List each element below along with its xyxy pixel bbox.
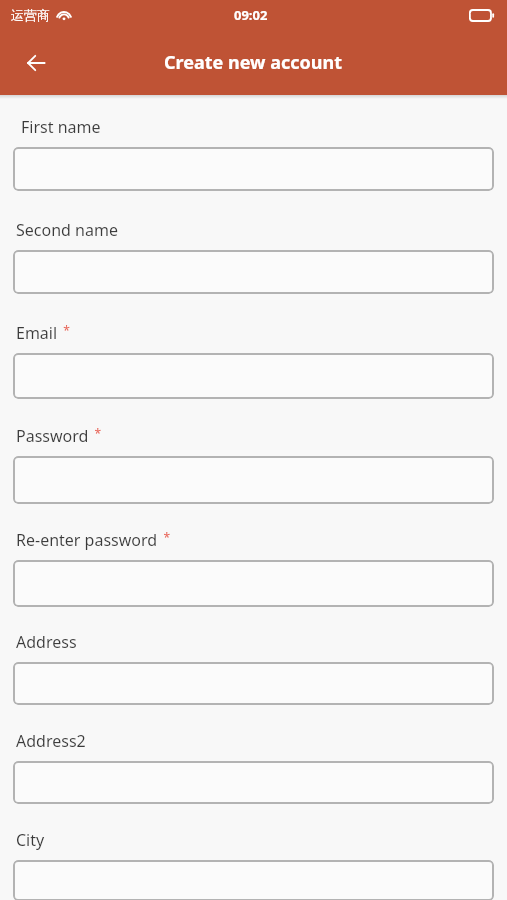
button[interactable]	[13, 456, 494, 504]
staticText: Email *	[16, 322, 70, 344]
staticText: Password *	[16, 425, 102, 447]
staticText: Create new account	[164, 50, 343, 75]
button[interactable]	[13, 560, 494, 607]
staticText: First name	[21, 116, 101, 138]
button[interactable]	[13, 250, 494, 294]
button[interactable]	[13, 353, 494, 399]
staticText: City	[16, 829, 45, 851]
button[interactable]	[13, 860, 494, 900]
staticText: Re-enter password *	[16, 529, 170, 551]
staticText: 09:02	[234, 6, 268, 24]
staticText: 运营商	[11, 7, 50, 23]
staticText: Address	[16, 631, 77, 653]
staticText: Address2	[16, 730, 86, 752]
staticText: Second name	[16, 219, 118, 241]
button[interactable]	[13, 761, 494, 804]
button[interactable]: Back	[12, 39, 60, 87]
button[interactable]	[13, 662, 494, 705]
button[interactable]	[13, 147, 494, 191]
